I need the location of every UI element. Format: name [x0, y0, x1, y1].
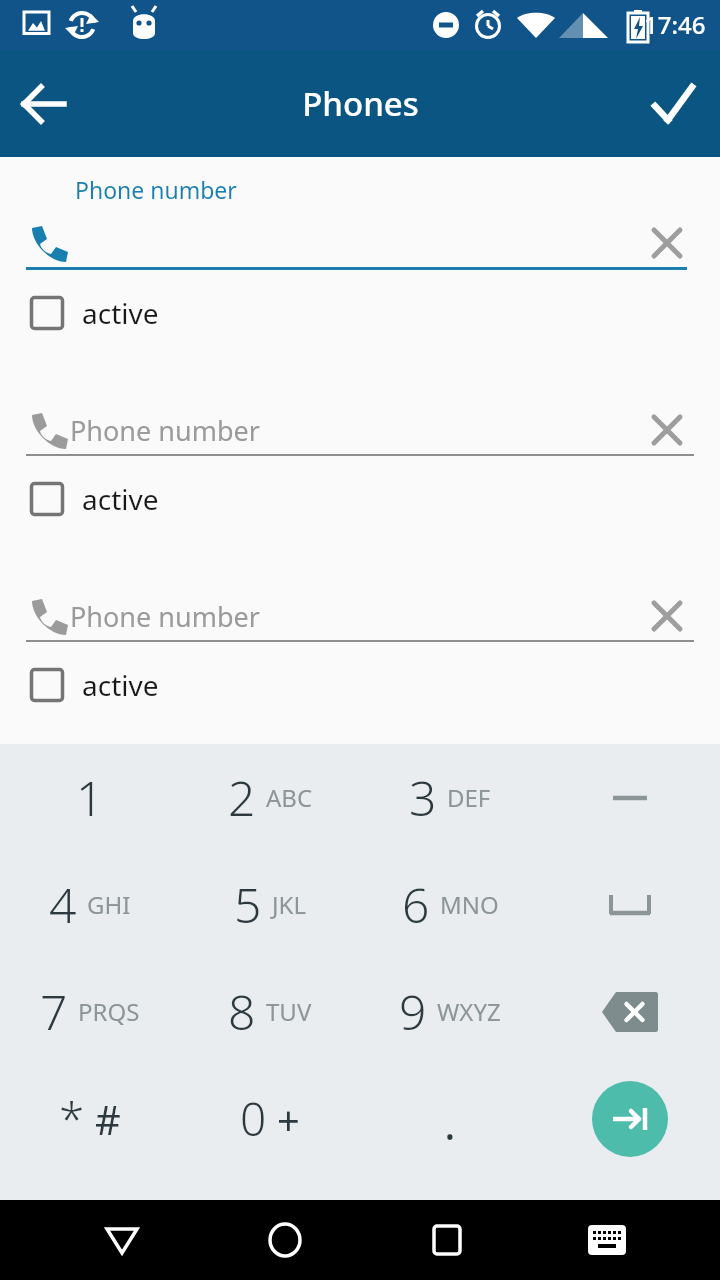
staticText: + [277, 1092, 300, 1146]
staticText: active [82, 294, 159, 332]
staticText: * [59, 1087, 85, 1150]
staticText: 7 [40, 979, 68, 1044]
button[interactable]: active [30, 294, 159, 332]
staticText: 9 [399, 979, 427, 1044]
button[interactable]: . [360, 1065, 540, 1172]
staticText: TUV [266, 995, 312, 1028]
staticText: Phone number [75, 174, 237, 205]
staticText: 8 [228, 979, 256, 1044]
button[interactable]: 0 [180, 1065, 360, 1172]
staticText: 1 [76, 765, 104, 830]
button[interactable]: Switch keyboard [562, 1200, 652, 1280]
staticText: Phone number [70, 598, 260, 635]
button[interactable]: 7 [0, 958, 180, 1065]
staticText: PRQS [78, 995, 140, 1028]
button[interactable]: Back [74, 1200, 170, 1280]
button[interactable]: 2 [180, 744, 360, 851]
button[interactable]: Done [624, 56, 720, 152]
staticText: 3 [409, 765, 437, 830]
staticText: active [82, 666, 159, 704]
button[interactable]: 6 [360, 851, 540, 958]
staticText: GHI [87, 888, 131, 921]
button[interactable]: 1 [0, 744, 180, 851]
staticText: 17:46 [644, 8, 706, 41]
button[interactable]: Back [0, 56, 96, 152]
staticText: DEF [447, 781, 491, 814]
staticText: JKL [272, 888, 306, 921]
button[interactable]: Recents [399, 1200, 495, 1280]
staticText: Phone number [70, 412, 260, 449]
button[interactable]: active [30, 480, 159, 518]
button[interactable]: Home [237, 1200, 333, 1280]
staticText: 5 [234, 872, 262, 937]
button[interactable]: Clear [640, 592, 694, 640]
staticText: # [95, 1092, 121, 1146]
staticText: 0 [240, 1087, 267, 1150]
button[interactable]: Dash [582, 750, 678, 846]
button[interactable]: 3 [360, 744, 540, 851]
button[interactable]: * [0, 1065, 180, 1172]
staticText: 4 [49, 872, 77, 937]
staticText: active [82, 480, 159, 518]
staticText: MNO [440, 888, 499, 921]
button[interactable]: Backspace [582, 964, 678, 1060]
button[interactable]: active [30, 666, 159, 704]
button[interactable]: Clear [640, 406, 694, 454]
button[interactable]: Clear [640, 219, 694, 267]
button[interactable]: 4 [0, 851, 180, 958]
button[interactable]: 9 [360, 958, 540, 1065]
button[interactable]: Space [582, 857, 678, 953]
staticText: Phones [302, 81, 419, 126]
staticText: 6 [402, 872, 430, 937]
staticText: . [444, 1093, 456, 1153]
staticText: ABC [266, 781, 313, 814]
button[interactable]: Enter [592, 1081, 668, 1157]
staticText: 2 [228, 765, 256, 830]
button[interactable]: 5 [180, 851, 360, 958]
button[interactable]: 8 [180, 958, 360, 1065]
staticText: WXYZ [437, 995, 501, 1028]
